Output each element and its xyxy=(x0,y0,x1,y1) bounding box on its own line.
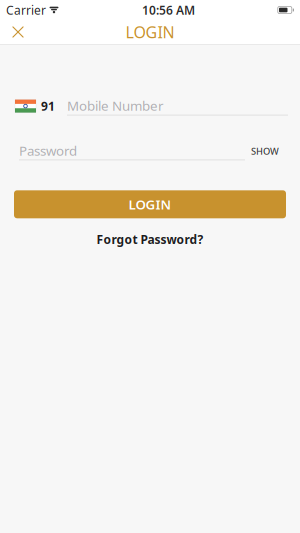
staticText: LOGIN xyxy=(125,21,174,43)
staticText: Mobile Number xyxy=(67,97,164,114)
staticText: Password xyxy=(19,142,77,159)
staticText: Carrier xyxy=(6,2,46,18)
staticText: SHOW xyxy=(251,145,279,157)
staticText: Forgot Password? xyxy=(96,231,203,247)
button[interactable]: Forgot Password? xyxy=(86,227,213,251)
button[interactable]: LOGIN xyxy=(14,190,286,218)
button[interactable]: Close xyxy=(2,20,34,44)
button[interactable]: Country code 91 xyxy=(15,98,67,114)
staticText: LOGIN xyxy=(128,195,171,213)
staticText: 10:56 AM xyxy=(142,2,195,18)
button[interactable]: SHOW xyxy=(245,145,285,160)
staticText: 91 xyxy=(41,98,55,114)
